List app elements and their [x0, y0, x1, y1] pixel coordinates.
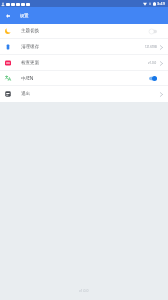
staticText: 清理缓存: [21, 44, 40, 50]
staticText: 设置: [20, 13, 29, 18]
staticText: 121.67KB: [145, 45, 157, 49]
staticText: 3:49: [157, 1, 165, 6]
staticText: 退出: [21, 91, 31, 97]
staticText: v1.0.0: [148, 61, 157, 65]
button[interactable]: 中/EN: [0, 71, 168, 86]
staticText: 中/EN: [21, 75, 34, 81]
button[interactable]: 退出: [0, 86, 168, 102]
button[interactable]: 开关 开: [149, 76, 157, 81]
staticText: 检查更新: [21, 60, 40, 66]
button[interactable]: 主题切换: [0, 24, 168, 39]
staticText: v1.0.0: [79, 288, 89, 293]
button[interactable]: 开关 关: [149, 29, 157, 34]
button[interactable]: 返回: [2, 10, 13, 21]
staticText: 主题切换: [21, 28, 40, 34]
button[interactable]: 清理缓存: [0, 39, 168, 55]
button[interactable]: 检查更新: [0, 55, 168, 71]
